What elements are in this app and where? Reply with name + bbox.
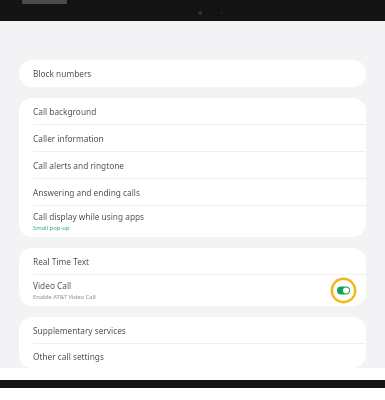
button[interactable]: Call display while using apps [19,206,366,237]
staticText: Call display while using apps [33,211,145,222]
button[interactable]: Block numbers [19,60,366,87]
button[interactable]: Video Call toggle [330,277,357,304]
staticText: Call background [33,106,97,117]
staticText: Caller information [33,133,104,144]
button[interactable]: Real Time Text [19,248,366,275]
staticText: Enable AT&T Video Call [33,293,96,301]
staticText: Block numbers [33,68,92,79]
staticText: Other call settings [33,351,104,362]
button[interactable]: Other call settings [19,344,366,368]
staticText: Call alerts and ringtone [33,160,125,171]
button[interactable]: Video Call [19,275,366,306]
staticText: Supplementary services [33,325,126,336]
button[interactable]: Call alerts and ringtone [19,152,366,179]
staticText: Real Time Text [33,256,90,267]
button[interactable]: Supplementary services [19,317,366,344]
staticText: Small pop-up [33,224,70,232]
staticText: Video Call [33,280,72,291]
staticText: Answering and ending calls [33,187,140,198]
button[interactable]: Answering and ending calls [19,179,366,206]
button[interactable]: Call background [19,98,366,125]
button[interactable]: Caller information [19,125,366,152]
